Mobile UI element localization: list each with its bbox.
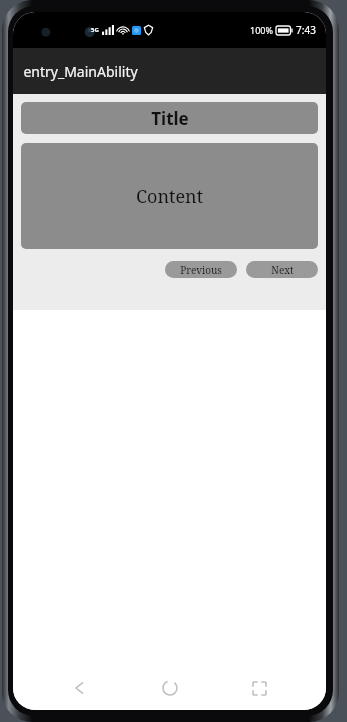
button[interactable]: Recents (237, 666, 281, 710)
staticText: entry_MainAbility (23, 62, 138, 81)
staticText: 100% (250, 24, 273, 36)
staticText: Next (271, 263, 294, 277)
button[interactable]: Previous (165, 261, 237, 278)
staticText: Previous (180, 263, 222, 277)
button[interactable]: Back (58, 666, 102, 710)
button[interactable]: Home (148, 666, 192, 710)
staticText: 5G (91, 26, 99, 34)
staticText: Title (151, 107, 189, 130)
button[interactable]: Next (246, 261, 318, 278)
button[interactable]: Title (21, 102, 318, 134)
staticText: 7:43 (296, 23, 316, 37)
staticText: Content (136, 184, 203, 209)
button[interactable]: Content (21, 143, 318, 249)
